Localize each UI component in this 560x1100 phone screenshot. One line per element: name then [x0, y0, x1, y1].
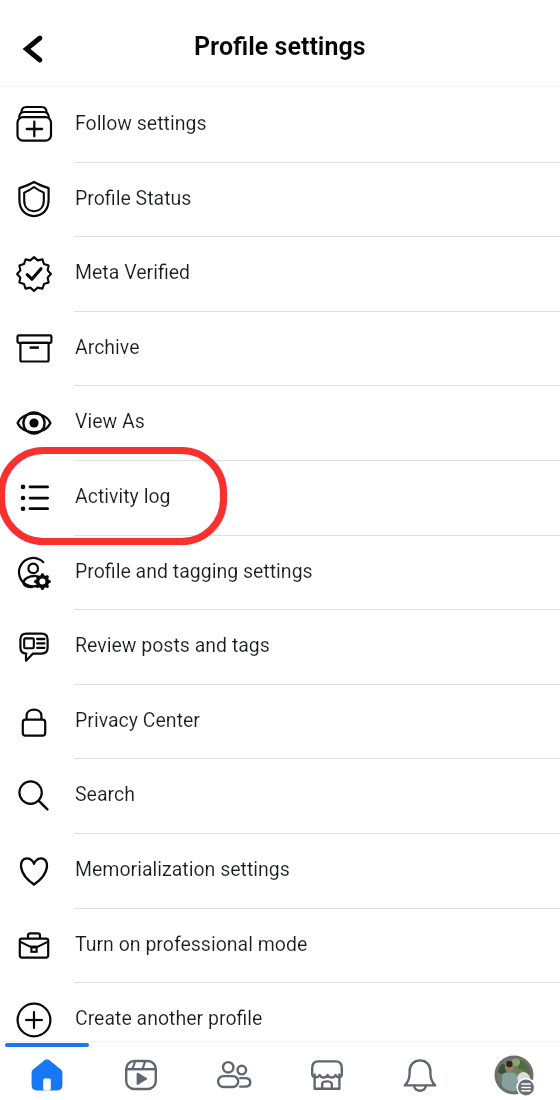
button[interactable]: Create another profile — [0, 982, 560, 1057]
staticText: Profile Status — [75, 187, 192, 210]
button[interactable]: Marketplace — [280, 1041, 373, 1100]
button[interactable]: Video — [94, 1041, 187, 1100]
button[interactable]: Profile and tagging settings — [0, 535, 560, 610]
button[interactable]: Review posts and tags — [0, 609, 560, 684]
button[interactable]: Back — [5, 21, 61, 77]
button[interactable]: Privacy Center — [0, 684, 560, 759]
staticText: Profile and tagging settings — [75, 560, 313, 583]
button[interactable]: Turn on professional mode — [0, 908, 560, 983]
staticText: Create another profile — [75, 1007, 263, 1030]
button[interactable]: Friends — [187, 1041, 280, 1100]
button[interactable]: Profile Status — [0, 162, 560, 237]
button[interactable]: Activity log — [0, 460, 560, 535]
staticText: Profile settings — [194, 32, 366, 61]
button[interactable]: Archive — [0, 311, 560, 386]
button[interactable]: Menu — [467, 1041, 560, 1100]
staticText: View As — [75, 410, 145, 433]
staticText: Activity log — [75, 485, 171, 508]
button[interactable]: Search — [0, 758, 560, 833]
staticText: Meta Verified — [75, 261, 191, 284]
staticText: Review posts and tags — [75, 634, 270, 657]
staticText: Search — [75, 783, 135, 806]
button[interactable]: View As — [0, 385, 560, 460]
staticText: Follow settings — [75, 112, 207, 135]
button[interactable]: Notifications — [373, 1041, 466, 1100]
button[interactable]: Follow settings — [0, 87, 560, 162]
staticText: Archive — [75, 336, 140, 359]
button[interactable]: Home — [0, 1041, 93, 1100]
button[interactable]: Meta Verified — [0, 236, 560, 311]
staticText: Memorialization settings — [75, 858, 290, 881]
staticText: Turn on professional mode — [75, 933, 308, 956]
staticText: Privacy Center — [75, 709, 200, 732]
button[interactable]: Memorialization settings — [0, 833, 560, 908]
